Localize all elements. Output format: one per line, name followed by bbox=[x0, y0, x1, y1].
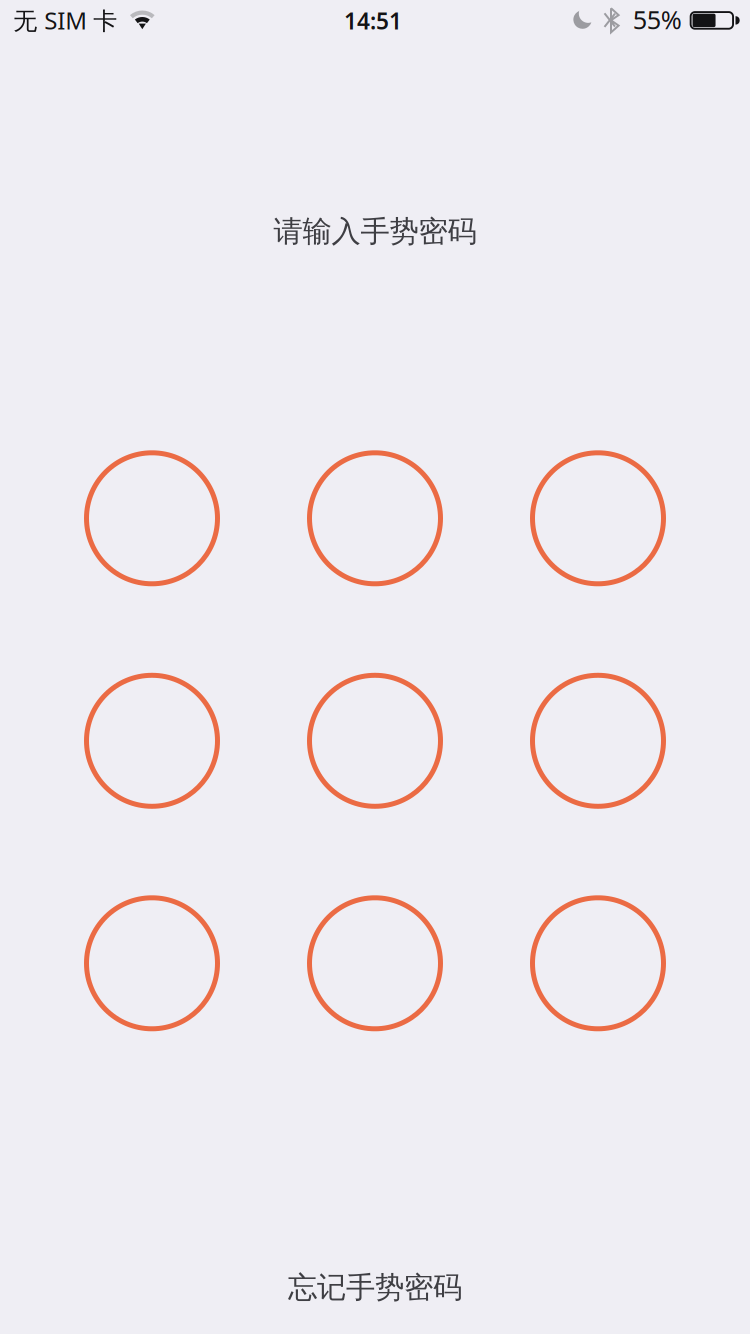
staticText: 请输入手势密码 bbox=[273, 213, 476, 249]
button[interactable]: Pattern dot 4 bbox=[86, 675, 217, 806]
staticText: 55% bbox=[633, 3, 682, 36]
button[interactable]: Pattern dot 1 bbox=[86, 453, 217, 584]
staticText: 忘记手势密码 bbox=[288, 1269, 462, 1305]
staticText: 无 SIM 卡 bbox=[13, 4, 117, 36]
button[interactable]: 忘记手势密码 bbox=[244, 1253, 506, 1321]
button[interactable]: Pattern dot 8 bbox=[309, 898, 440, 1029]
button[interactable]: Pattern dot 9 bbox=[532, 898, 663, 1029]
button[interactable]: Pattern dot 6 bbox=[532, 675, 663, 806]
button[interactable]: Pattern dot 3 bbox=[532, 453, 663, 584]
staticText: 14:51 bbox=[344, 6, 402, 36]
button[interactable]: Pattern dot 5 bbox=[309, 675, 440, 806]
button[interactable]: Pattern dot 2 bbox=[309, 453, 440, 584]
button[interactable]: Pattern dot 7 bbox=[86, 898, 217, 1029]
